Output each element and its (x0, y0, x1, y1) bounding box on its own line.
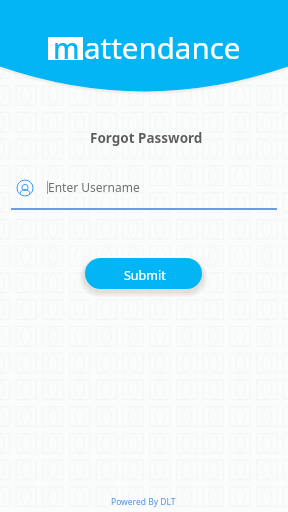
staticText: Submit (124, 267, 166, 284)
staticText: Powered By DLT (111, 496, 176, 508)
other: Account (15, 178, 35, 198)
staticText: Forgot Password (90, 129, 203, 147)
staticText: m (53, 29, 80, 67)
button[interactable]: Account (11, 174, 277, 210)
button[interactable]: Submit (85, 258, 202, 289)
staticText: Enter Username (48, 179, 140, 195)
button[interactable]: Powered By DLT (111, 496, 176, 508)
staticText: attendance (84, 27, 241, 67)
